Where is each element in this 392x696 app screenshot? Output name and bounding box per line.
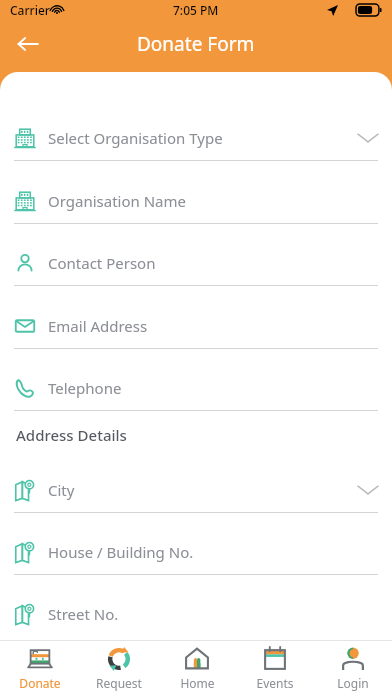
button[interactable]: Events bbox=[236, 640, 314, 696]
staticText: House / Building No. bbox=[48, 542, 194, 562]
button[interactable]: Donate bbox=[0, 640, 79, 696]
button[interactable]: Back bbox=[8, 24, 48, 64]
staticText: Street No. bbox=[48, 604, 119, 624]
staticText: Request bbox=[96, 675, 142, 691]
button[interactable]: Login bbox=[314, 640, 392, 696]
button[interactable]: Email Address bbox=[0, 303, 392, 349]
staticText: Login bbox=[337, 675, 369, 691]
button[interactable]: Contact Person bbox=[0, 240, 392, 286]
staticText: Events bbox=[256, 675, 294, 691]
button[interactable]: City bbox=[0, 467, 392, 513]
staticText: Contact Person bbox=[48, 253, 156, 273]
button[interactable]: Home bbox=[158, 640, 236, 696]
button[interactable]: Organisation Name bbox=[0, 178, 392, 224]
staticText: Donate bbox=[19, 675, 61, 691]
staticText: Telephone bbox=[48, 378, 122, 398]
staticText: Email Address bbox=[48, 316, 148, 336]
staticText: Donate Form bbox=[137, 31, 255, 57]
button[interactable]: Street No. bbox=[0, 591, 392, 637]
button[interactable]: House / Building No. bbox=[0, 529, 392, 575]
button[interactable]: Request bbox=[79, 640, 158, 696]
staticText: Select Organisation Type bbox=[48, 128, 223, 148]
staticText: Home bbox=[180, 675, 215, 691]
button[interactable]: Select Organisation Type bbox=[0, 115, 392, 161]
staticText: Carrier bbox=[10, 2, 50, 18]
staticText: Organisation Name bbox=[48, 191, 186, 211]
staticText: City bbox=[48, 480, 75, 500]
staticText: 7:05 PM bbox=[173, 2, 219, 18]
staticText: Address Details bbox=[16, 425, 127, 445]
button[interactable]: Telephone bbox=[0, 365, 392, 411]
